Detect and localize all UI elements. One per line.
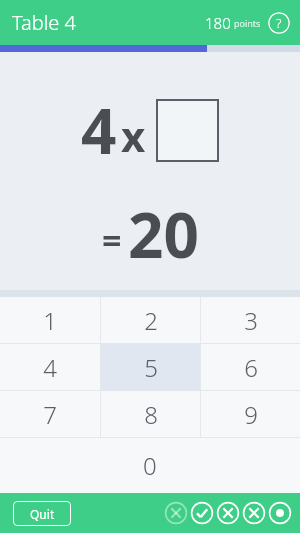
button[interactable]: 8 [101, 391, 200, 437]
staticText: Quit [30, 506, 55, 522]
staticText: 5 [144, 351, 158, 384]
button[interactable]: Quit [13, 501, 71, 526]
button[interactable]: Correct answer [190, 501, 214, 525]
staticText: 180 [205, 13, 231, 33]
staticText: 4 [43, 351, 57, 384]
staticText: 7 [43, 398, 57, 431]
button[interactable]: 1 [0, 297, 100, 343]
staticText: 4 [81, 88, 117, 172]
button[interactable]: 5 [101, 344, 200, 390]
button[interactable]: 6 [201, 344, 300, 390]
staticText: = [102, 217, 122, 263]
button[interactable]: 4 [0, 344, 100, 390]
staticText: 2 [144, 304, 158, 337]
button[interactable]: Help [268, 12, 290, 34]
button[interactable]: 9 [201, 391, 300, 437]
button[interactable]: Current question [268, 501, 292, 525]
staticText: 0 [143, 449, 157, 482]
button[interactable]: Wrong answer [216, 501, 240, 525]
button[interactable]: 2 [101, 297, 200, 343]
button[interactable]: Answer box [156, 99, 219, 162]
staticText: x [121, 107, 146, 164]
staticText: ? [276, 14, 282, 32]
button[interactable]: 3 [201, 297, 300, 343]
staticText: points [234, 17, 261, 29]
button[interactable]: 7 [0, 391, 100, 437]
staticText: 8 [144, 398, 158, 431]
button[interactable]: Wrong answer [164, 501, 188, 525]
staticText: 1 [43, 304, 57, 337]
staticText: 6 [244, 351, 258, 384]
staticText: 9 [244, 398, 258, 431]
staticText: Table 4 [12, 9, 76, 36]
button[interactable]: Wrong answer [242, 501, 266, 525]
button[interactable]: 0 [0, 438, 300, 493]
staticText: 20 [128, 192, 199, 276]
staticText: 3 [244, 304, 258, 337]
